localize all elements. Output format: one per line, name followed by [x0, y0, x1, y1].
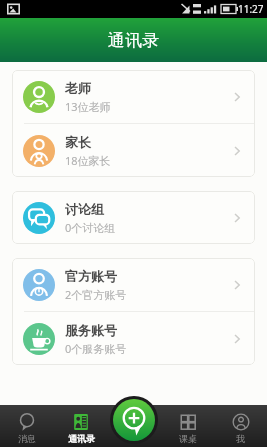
staticText: 消息 [18, 433, 36, 444]
button[interactable]: 通讯录 [54, 409, 108, 444]
staticText: 服务账号 [65, 322, 117, 338]
button[interactable]: New message [113, 399, 155, 441]
button[interactable]: 服务账号 [12, 312, 255, 365]
button[interactable]: 课桌 [161, 409, 214, 444]
button[interactable]: 家长 [12, 124, 255, 177]
staticText: 2个官方账号 [65, 287, 127, 302]
button[interactable]: 老师 [12, 70, 255, 123]
button[interactable]: 我 [214, 409, 267, 444]
button[interactable]: 消息 [0, 409, 54, 444]
staticText: 13位老师 [65, 99, 111, 114]
button[interactable]: 官方账号 [12, 258, 255, 311]
staticText: 讨论组 [65, 201, 104, 217]
staticText: 通讯录 [68, 433, 95, 444]
staticText: 家长 [65, 134, 91, 150]
button[interactable]: 讨论组 [12, 191, 255, 244]
staticText: 通讯录 [108, 30, 159, 51]
staticText: 老师 [65, 80, 91, 96]
staticText: 18位家长 [65, 153, 111, 168]
staticText: 我 [236, 433, 245, 444]
staticText: 官方账号 [65, 268, 117, 284]
staticText: 0个服务账号 [65, 341, 127, 356]
staticText: 课桌 [179, 433, 197, 444]
staticText: 11:27 [238, 2, 264, 16]
staticText: 0个讨论组 [65, 220, 116, 235]
